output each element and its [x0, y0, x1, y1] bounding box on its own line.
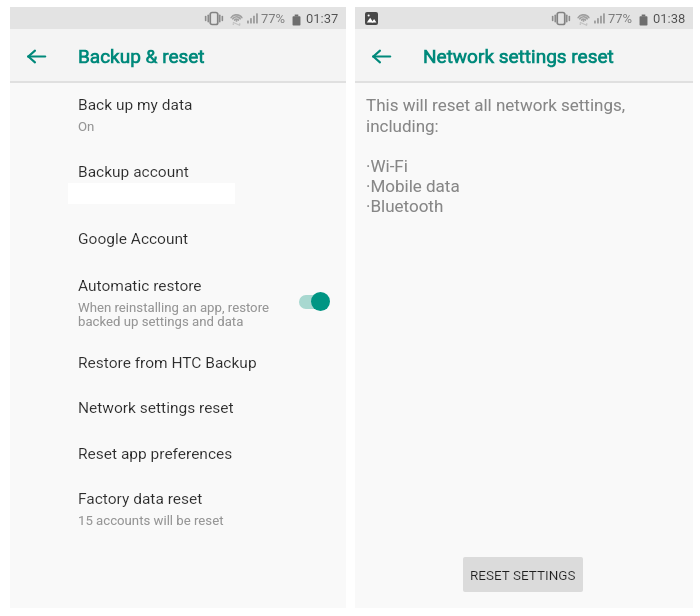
- staticText: When reinstalling an app, restore backed…: [78, 300, 269, 329]
- staticText: Automatic restore: [78, 277, 202, 295]
- staticText: 01:37: [306, 11, 339, 26]
- staticText: This will reset all network settings, in…: [366, 95, 626, 137]
- staticText: Restore from HTC Backup: [78, 354, 257, 372]
- button[interactable]: Automatic restore: [10, 273, 346, 333]
- staticText: Network settings reset: [423, 45, 614, 67]
- staticText: Back up my data: [78, 96, 193, 114]
- button[interactable]: Network settings reset: [10, 395, 346, 425]
- staticText: On: [78, 119, 95, 134]
- staticText: Network settings reset: [78, 399, 234, 417]
- staticText: ·Wi-Fi ·Mobile data ·Bluetooth: [366, 156, 460, 216]
- button[interactable]: Reset app preferences: [10, 441, 346, 471]
- staticText: 77%: [261, 11, 286, 26]
- staticText: RESET SETTINGS: [470, 567, 576, 583]
- staticText: 77%: [608, 11, 633, 26]
- button[interactable]: Back: [361, 36, 401, 76]
- button[interactable]: Back up my data: [10, 92, 346, 137]
- staticText: Factory data reset: [78, 490, 203, 508]
- button[interactable]: Restore from HTC Backup: [10, 350, 346, 380]
- button[interactable]: RESET SETTINGS: [463, 557, 583, 592]
- staticText: Backup & reset: [78, 45, 205, 67]
- button[interactable]: Factory data reset: [10, 486, 346, 531]
- staticText: Google Account: [78, 230, 189, 248]
- button[interactable]: Back: [16, 36, 56, 76]
- button[interactable]: Backup account: [10, 159, 346, 209]
- staticText: 01:38: [653, 11, 686, 26]
- staticText: 15 accounts will be reset: [78, 513, 224, 528]
- staticText: Reset app preferences: [78, 445, 233, 463]
- staticText: Backup account: [78, 163, 189, 181]
- button[interactable]: Google Account: [10, 226, 346, 256]
- button[interactable]: [289, 280, 337, 320]
